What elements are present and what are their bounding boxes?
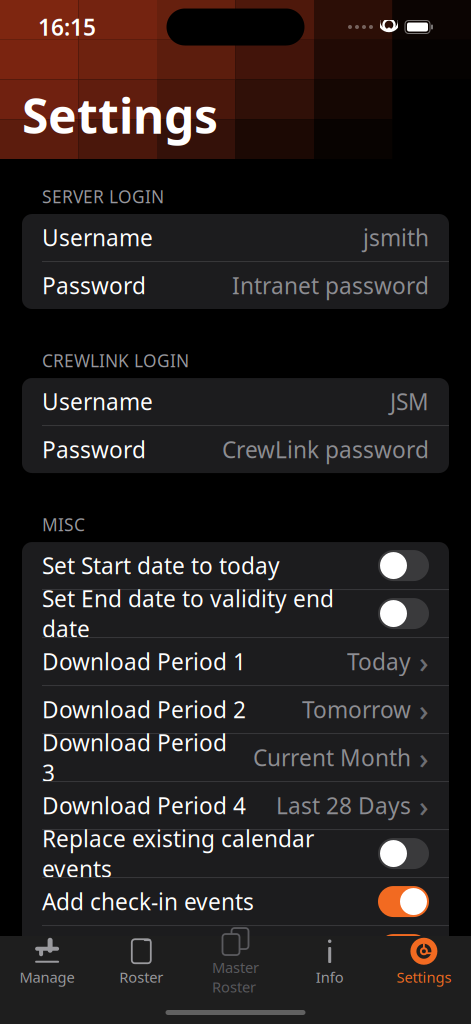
staticText: Current Month [253,742,411,773]
staticText: 16:15 [38,12,96,42]
button[interactable]: Roster [94,937,188,987]
staticText: Username [42,222,153,253]
button[interactable]: Add standby events [22,974,449,1021]
staticText: Add alert to check-in events [42,934,337,965]
button[interactable]: Username [22,378,449,425]
staticText: Download Period 4 [42,790,246,821]
staticText: Set End date to validity end date [42,583,334,644]
button[interactable]: Info [283,937,377,987]
button[interactable]: Set End date to validity end date [22,590,449,637]
staticText: Master Roster [212,957,259,996]
staticText: Last 28 Days [276,790,411,821]
button[interactable]: Download Period 3 [22,734,449,781]
staticText: Download Period 3 [42,727,227,788]
staticText: › [419,642,429,681]
staticText: MISC [42,513,85,536]
button[interactable]: Replace existing calendar events [22,830,449,877]
staticText: Add standby events [42,982,251,1013]
staticText: Roster [119,967,163,987]
button[interactable]: Master Roster [188,937,283,987]
staticText: Password [42,434,146,465]
button[interactable]: Download Period 1 [22,638,449,685]
button[interactable]: Settings [377,937,471,987]
staticText: Info [316,967,344,987]
button[interactable]: Password [22,426,449,473]
button[interactable]: Add alert to check-in events [22,926,449,973]
staticText: › [419,786,429,825]
staticText: Download Period 2 [42,694,246,725]
staticText: jsmith [363,222,429,253]
staticText: Settings [22,83,218,147]
staticText: Replace existing calendar events [42,823,314,884]
button[interactable]: Manage [0,937,94,987]
button[interactable]: Add check-in events [22,878,449,925]
staticText: Manage [20,967,75,987]
staticText: Settings [396,967,451,987]
staticText: CREWLINK LOGIN [42,349,189,372]
staticText: › [419,738,429,777]
staticText: › [419,690,429,729]
staticText: Add check-in events [42,886,254,917]
staticText: Password [42,270,146,301]
button[interactable]: Set Start date to today [22,542,449,589]
button[interactable]: Download Period 4 [22,782,449,829]
staticText: Today [347,646,411,677]
staticText: Set Start date to today [42,550,280,581]
staticText: Download Period 1 [42,646,246,677]
staticText: SERVER LOGIN [42,185,164,208]
staticText: Username [42,386,153,417]
button[interactable]: Password [22,262,449,309]
staticText: CrewLink password [222,434,429,465]
staticText: Intranet password [232,270,429,301]
staticText: JSM [390,386,429,417]
staticText: Tomorrow [302,694,411,725]
button[interactable]: Download Period 2 [22,686,449,733]
button[interactable]: Username [22,214,449,261]
